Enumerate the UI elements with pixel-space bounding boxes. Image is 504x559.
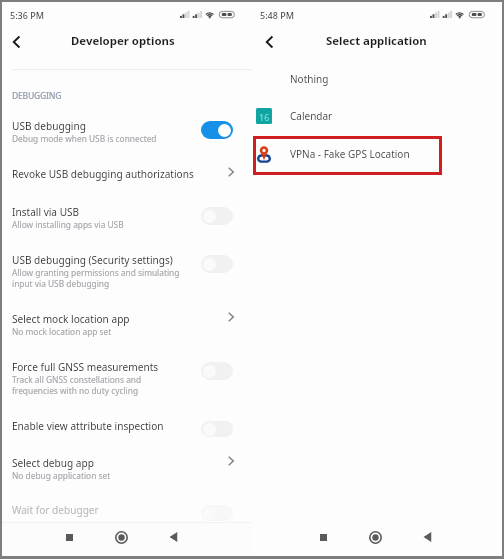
button[interactable]: Toggle on [201,121,233,139]
staticText: Wait for debugger [12,503,99,517]
button[interactable]: Toggle off [201,362,233,380]
button[interactable]: Home [363,525,387,549]
button[interactable]: Toggle off [201,207,233,225]
button[interactable]: Recent apps [311,525,335,549]
button[interactable]: Select debug app [2,456,252,481]
staticText: Developer options [71,33,175,49]
button[interactable]: Install via USB [2,205,252,230]
staticText: VPNa - Fake GPS Location [290,147,410,161]
staticText: Force full GNSS measurements [12,360,159,374]
staticText: DEBUGGING [12,90,62,102]
staticText: No debug application set [12,470,111,481]
staticText: 5:36 PM [10,9,44,21]
staticText: 5:48 PM [260,9,294,21]
staticText: Enable view attribute inspection [12,419,164,433]
staticText: Allow installing apps via USB [12,219,124,230]
staticText: Select application [326,33,427,49]
staticText: Debug mode when USB is connected [12,133,157,144]
staticText: Install via USB [12,205,80,219]
staticText: USB debugging (Security settings) [12,253,173,267]
staticText: Revoke USB debugging authorizations [12,167,194,181]
button[interactable]: 16 [252,101,502,131]
staticText: Select mock location app [12,312,130,326]
staticText: frequencies with no duty cycling [12,385,139,396]
button[interactable]: VPNa - Fake GPS Location [252,139,502,169]
button[interactable]: Wait for debugger [2,503,252,519]
button[interactable]: Nothing [252,64,502,94]
button[interactable]: Toggle off [201,421,233,437]
staticText: No mock location app set [12,326,112,337]
staticText: Allow granting permissions and simulatin… [12,267,180,278]
staticText: 16 [259,111,270,123]
button[interactable]: Back [161,525,185,549]
button[interactable]: Home [109,525,133,549]
button[interactable]: USB debugging (Security settings) [2,253,252,289]
button[interactable]: Recent apps [57,525,81,549]
staticText: Track all GNSS constellations and [12,374,142,385]
button[interactable]: Revoke USB debugging authorizations [2,167,252,181]
button[interactable]: Enable view attribute inspection [2,419,252,435]
button[interactable]: Toggle off [201,255,233,273]
staticText: Select debug app [12,456,94,470]
button[interactable]: Navigate up [5,32,27,54]
button[interactable]: Force full GNSS measurements [2,360,252,396]
button[interactable]: Select mock location app [2,312,252,337]
staticText: input via USB debugging [12,278,110,289]
button[interactable]: Back [415,525,439,549]
staticText: Calendar [290,109,333,123]
button[interactable]: USB debugging [2,119,252,144]
staticText: Nothing [290,72,329,86]
staticText: USB debugging [12,119,86,133]
button[interactable]: Navigate up [258,32,280,54]
